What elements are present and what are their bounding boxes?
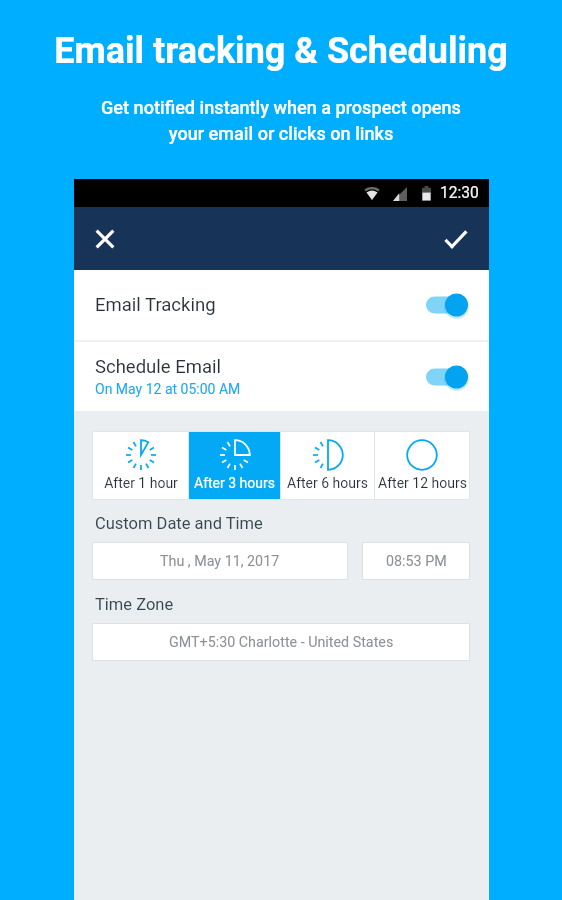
staticText: Time Zone	[95, 595, 174, 614]
staticText: Thu , May 11, 2017	[160, 553, 280, 570]
button[interactable]: Close	[85, 219, 125, 259]
button[interactable]: After 12 hours	[375, 432, 469, 499]
staticText: After 3 hours	[194, 475, 275, 491]
button[interactable]: After 1 hour	[93, 432, 188, 499]
staticText: After 1 hour	[104, 475, 178, 491]
staticText: Email tracking & Scheduling	[0, 30, 562, 72]
button[interactable]: 08:53 PM	[362, 542, 470, 580]
button[interactable]: Schedule Email	[74, 342, 489, 411]
button[interactable]: GMT+5:30 Charlotte - United States	[92, 623, 470, 661]
staticText: After 6 hours	[287, 475, 368, 491]
button[interactable]: Thu , May 11, 2017	[92, 542, 348, 580]
button[interactable]: Done	[436, 220, 476, 260]
staticText: After 12 hours	[378, 475, 467, 491]
staticText: On May 12 at 05:00 AM	[95, 381, 241, 397]
staticText: Custom Date and Time	[95, 514, 263, 533]
staticText: Get notified instantly when a prospect o…	[0, 97, 562, 144]
staticText: 08:53 PM	[386, 553, 447, 570]
staticText: Schedule Email	[95, 356, 221, 378]
button[interactable]: After 6 hours	[281, 432, 374, 499]
staticText: GMT+5:30 Charlotte - United States	[169, 634, 394, 651]
staticText: Email Tracking	[95, 294, 426, 316]
staticText: 12:30	[440, 184, 479, 202]
button[interactable]: After 3 hours	[189, 432, 280, 499]
button[interactable]: Email Tracking	[74, 270, 489, 340]
